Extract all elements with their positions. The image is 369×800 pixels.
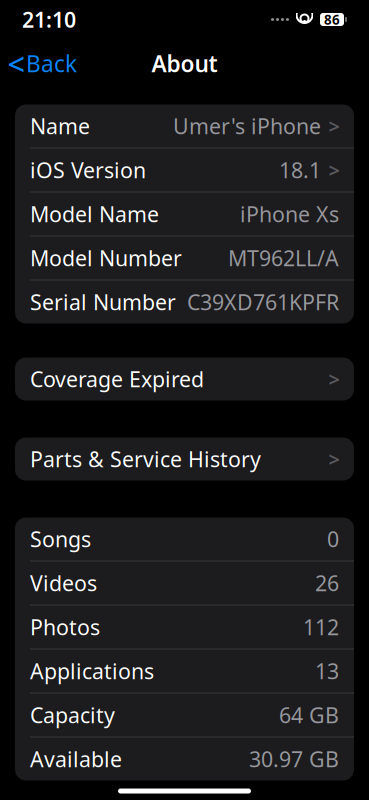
button[interactable]: Applications bbox=[15, 649, 354, 692]
staticText: 26 bbox=[315, 569, 339, 597]
staticText: Name bbox=[30, 112, 90, 140]
staticText: 21:10 bbox=[22, 5, 76, 34]
button[interactable]: Coverage Expired bbox=[15, 357, 354, 400]
button[interactable]: Songs bbox=[15, 517, 354, 560]
staticText: Capacity bbox=[30, 701, 115, 729]
staticText: Back bbox=[26, 48, 77, 78]
button[interactable]: iOS Version bbox=[15, 148, 354, 191]
staticText: 112 bbox=[303, 613, 339, 641]
staticText: Serial Number bbox=[30, 288, 176, 316]
staticText: Photos bbox=[30, 613, 100, 641]
staticText: Coverage Expired bbox=[30, 365, 204, 393]
staticText: > bbox=[328, 366, 339, 392]
staticText: Videos bbox=[30, 569, 97, 597]
staticText: Available bbox=[30, 745, 122, 773]
staticText: iPhone Xs bbox=[240, 200, 339, 228]
staticText: C39XD761KPFR bbox=[187, 288, 339, 316]
staticText: 13 bbox=[315, 657, 339, 685]
button[interactable]: Model Number bbox=[15, 236, 354, 279]
button[interactable]: Available bbox=[15, 737, 354, 780]
staticText: Model Number bbox=[30, 244, 182, 272]
staticText: 30.97 GB bbox=[249, 745, 339, 773]
button[interactable]: Parts & Service History bbox=[15, 437, 354, 480]
button[interactable]: Name bbox=[15, 104, 354, 147]
button[interactable]: Model Name bbox=[15, 192, 354, 235]
button[interactable]: < bbox=[0, 42, 77, 84]
staticText: 0 bbox=[327, 525, 339, 553]
button[interactable]: Serial Number bbox=[15, 280, 354, 323]
staticText: Model Name bbox=[30, 200, 159, 228]
button[interactable]: Photos bbox=[15, 605, 354, 648]
staticText: Songs bbox=[30, 525, 91, 553]
staticText: Applications bbox=[30, 657, 154, 685]
staticText: 18.1 bbox=[279, 156, 321, 184]
button[interactable]: Videos bbox=[15, 561, 354, 604]
staticText: Umer's iPhone bbox=[173, 112, 321, 140]
staticText: 86 bbox=[324, 11, 340, 28]
staticText: 64 GB bbox=[279, 701, 339, 729]
staticText: < bbox=[7, 43, 25, 84]
staticText: Parts & Service History bbox=[30, 445, 261, 473]
staticText: MT962LL/A bbox=[228, 244, 339, 272]
staticText: > bbox=[328, 113, 339, 139]
staticText: About bbox=[151, 48, 217, 78]
staticText: > bbox=[328, 446, 339, 472]
staticText: iOS Version bbox=[30, 156, 146, 184]
button[interactable]: Capacity bbox=[15, 693, 354, 736]
staticText: > bbox=[328, 157, 339, 183]
